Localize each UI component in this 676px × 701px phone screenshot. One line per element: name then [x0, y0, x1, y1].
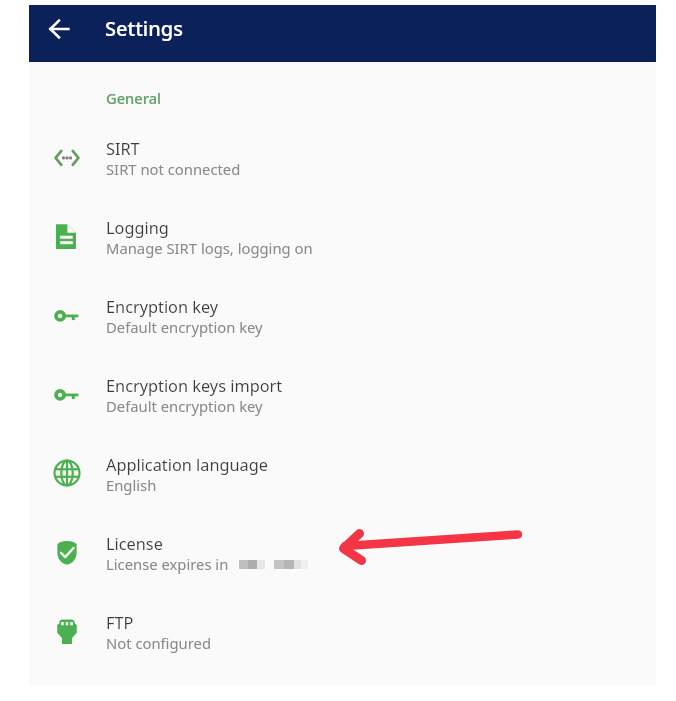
staticText: Settings — [105, 15, 183, 42]
staticText: SIRT — [106, 138, 140, 160]
staticText: Default encryption key — [106, 396, 263, 416]
button[interactable]: License — [29, 526, 656, 605]
button[interactable]: Encryption key — [29, 289, 656, 368]
staticText: Manage SIRT logs, logging on — [106, 238, 313, 258]
staticText: SIRT not connected — [106, 159, 241, 179]
staticText: License — [106, 533, 163, 555]
staticText: Logging — [106, 217, 169, 239]
staticText: FTP — [106, 612, 134, 634]
button[interactable]: SIRT — [29, 131, 656, 210]
button[interactable]: Logging — [29, 210, 656, 289]
button[interactable]: Application language — [29, 447, 656, 526]
button[interactable]: FTP — [29, 605, 656, 684]
button[interactable]: Back — [39, 9, 79, 49]
staticText: Encryption keys import — [106, 375, 283, 397]
staticText: Not configured — [106, 633, 211, 653]
staticText: Encryption key — [106, 296, 219, 318]
staticText: General — [106, 88, 162, 108]
button[interactable]: Encryption keys import — [29, 368, 656, 447]
staticText: Default encryption key — [106, 317, 263, 337]
staticText: License expires in — [106, 554, 229, 574]
staticText: Application language — [106, 454, 268, 476]
staticText: English — [106, 475, 157, 495]
